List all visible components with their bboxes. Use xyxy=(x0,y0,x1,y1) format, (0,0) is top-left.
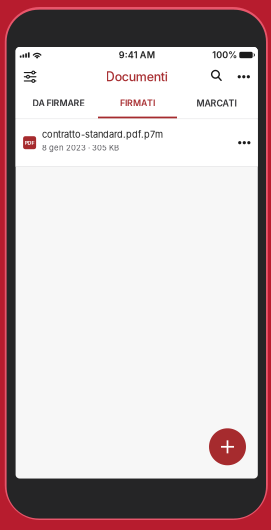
staticText: Documenti xyxy=(106,69,168,84)
button[interactable]: FIRMATI xyxy=(98,90,177,118)
button[interactable]: MARCATI xyxy=(177,90,256,118)
button[interactable]: Altro xyxy=(233,63,255,90)
button[interactable]: DA FIRMARE xyxy=(19,90,98,118)
button[interactable]: PDF xyxy=(16,119,258,166)
staticText: MARCATI xyxy=(196,98,236,108)
button[interactable]: Filtri xyxy=(18,63,43,90)
staticText: FIRMATI xyxy=(120,98,155,108)
staticText: 9:41 AM xyxy=(119,49,155,60)
staticText: DA FIRMARE xyxy=(32,98,84,108)
staticText: 8 gen 2023 · 305 KB xyxy=(42,143,119,152)
staticText: contratto-standard.pdf.p7m xyxy=(42,129,163,140)
staticText: 100% xyxy=(212,50,237,60)
button[interactable]: Cerca xyxy=(204,63,228,90)
button[interactable]: Aggiungi documento xyxy=(209,428,246,465)
staticText: PDF xyxy=(25,139,35,146)
